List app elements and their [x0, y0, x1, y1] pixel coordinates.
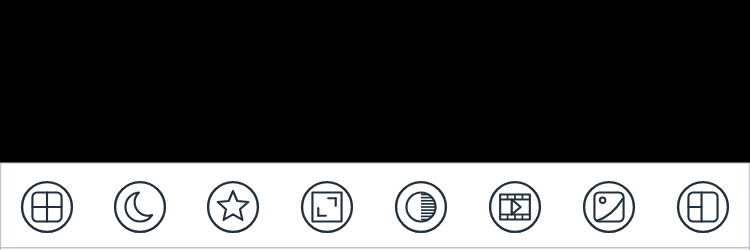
- button[interactable]: Night mode: [93, 163, 186, 250]
- button[interactable]: Contrast: [374, 163, 468, 250]
- button[interactable]: Image: [562, 163, 656, 250]
- button[interactable]: Split layout: [656, 163, 750, 250]
- button[interactable]: Grid layout: [0, 163, 93, 250]
- button[interactable]: Video: [468, 163, 562, 250]
- button[interactable]: Favorite: [186, 163, 280, 250]
- button[interactable]: Resize: [280, 163, 374, 250]
